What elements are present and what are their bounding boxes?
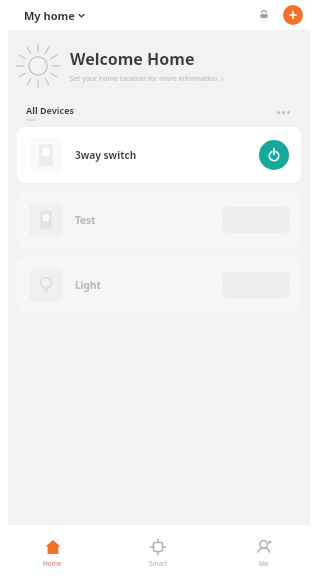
staticText: My home: [24, 8, 75, 23]
button[interactable]: Toggle 3way switch power: [259, 140, 289, 170]
staticText: Test: [75, 213, 96, 227]
button[interactable]: Add device: [283, 5, 303, 25]
button[interactable]: Light: [17, 257, 301, 313]
button[interactable]: Me: [211, 525, 317, 579]
button[interactable]: 3way switch: [17, 127, 301, 183]
button[interactable]: More options: [273, 105, 294, 120]
staticText: 3way switch: [75, 148, 137, 162]
button[interactable]: Home: [0, 525, 105, 579]
staticText: Light: [75, 278, 101, 292]
button[interactable]: My home: [22, 5, 87, 26]
button[interactable]: Scan device: [253, 4, 275, 26]
button[interactable]: All Devices: [26, 104, 75, 121]
staticText: Set your home location for more informat…: [70, 74, 224, 84]
button[interactable]: Smart: [105, 525, 211, 579]
staticText: All Devices: [26, 104, 75, 116]
button[interactable]: Test: [17, 192, 301, 248]
staticText: Welcome Home: [70, 48, 195, 70]
staticText: Me: [259, 559, 269, 568]
button[interactable]: Welcome Home: [8, 38, 310, 94]
staticText: Smart: [149, 559, 168, 568]
staticText: Home: [43, 559, 62, 568]
